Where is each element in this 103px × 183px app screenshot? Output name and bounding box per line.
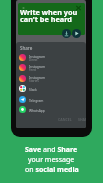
- staticText: Feed: [29, 68, 36, 72]
- staticText: Direct: [29, 58, 38, 62]
- staticText: Instagram: [29, 54, 46, 58]
- staticText: Instagram: [29, 75, 46, 79]
- button[interactable]: Instagram: [16, 62, 86, 73]
- staticText: Telegram: [29, 98, 44, 102]
- staticText: SHARE: [78, 117, 86, 122]
- button[interactable]: Telegram: [16, 94, 86, 105]
- staticText: Instagram: [29, 64, 46, 68]
- button[interactable]: Play: [72, 29, 81, 38]
- button[interactable]: Slack: [16, 83, 86, 94]
- button[interactable]: CANCEL: [57, 116, 73, 123]
- staticText: Slack: [29, 87, 37, 91]
- staticText: your message: [28, 155, 75, 165]
- staticText: on social media: [25, 165, 79, 175]
- staticText: Share: [20, 45, 33, 51]
- button[interactable]: WhatsApp: [16, 104, 86, 115]
- button[interactable]: Download: [62, 29, 71, 38]
- staticText: WhatsApp: [29, 108, 45, 112]
- button[interactable]: Instagram: [16, 52, 86, 63]
- staticText: Write when you can't be heard: [20, 7, 78, 24]
- staticText: CANCEL: [58, 117, 72, 122]
- staticText: Stories: [29, 79, 39, 83]
- button[interactable]: SHARE: [77, 116, 86, 123]
- button[interactable]: Instagram: [16, 73, 86, 84]
- staticText: Save and Share: [25, 145, 78, 155]
